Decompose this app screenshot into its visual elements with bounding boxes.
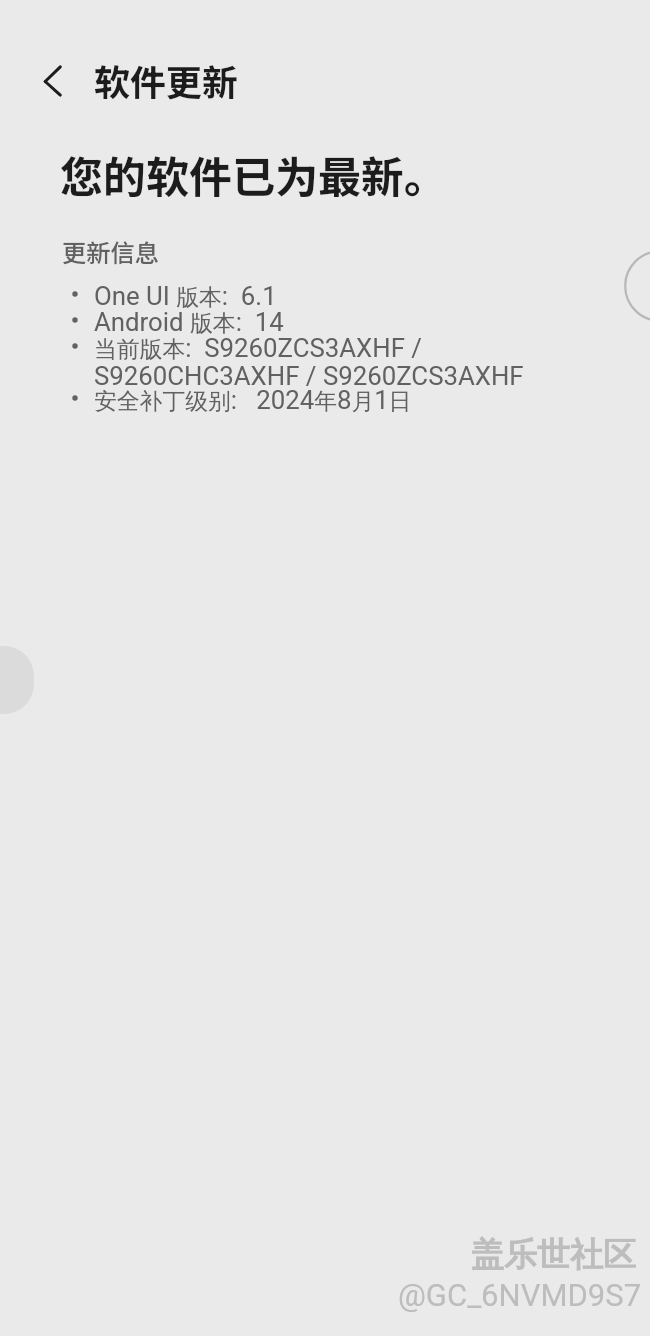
staticText: 盖乐世社区 [471,1234,636,1276]
staticText: Android 版本: 14 [94,307,284,338]
staticText: 软件更新 [94,54,239,106]
staticText: @GC_6NVMD9S7 [398,1277,642,1313]
staticText: 安全补丁级别: 2024年8月1日 [94,385,412,416]
button[interactable]: Back [28,57,76,105]
staticText: 您的软件已为最新。 [60,143,447,205]
staticText: 更新信息 [62,234,159,269]
staticText: One UI 版本: 6.1 [94,281,277,312]
staticText: 当前版本: S9260ZCS3AXHF / S9260CHC3AXHF / S9… [94,333,524,391]
